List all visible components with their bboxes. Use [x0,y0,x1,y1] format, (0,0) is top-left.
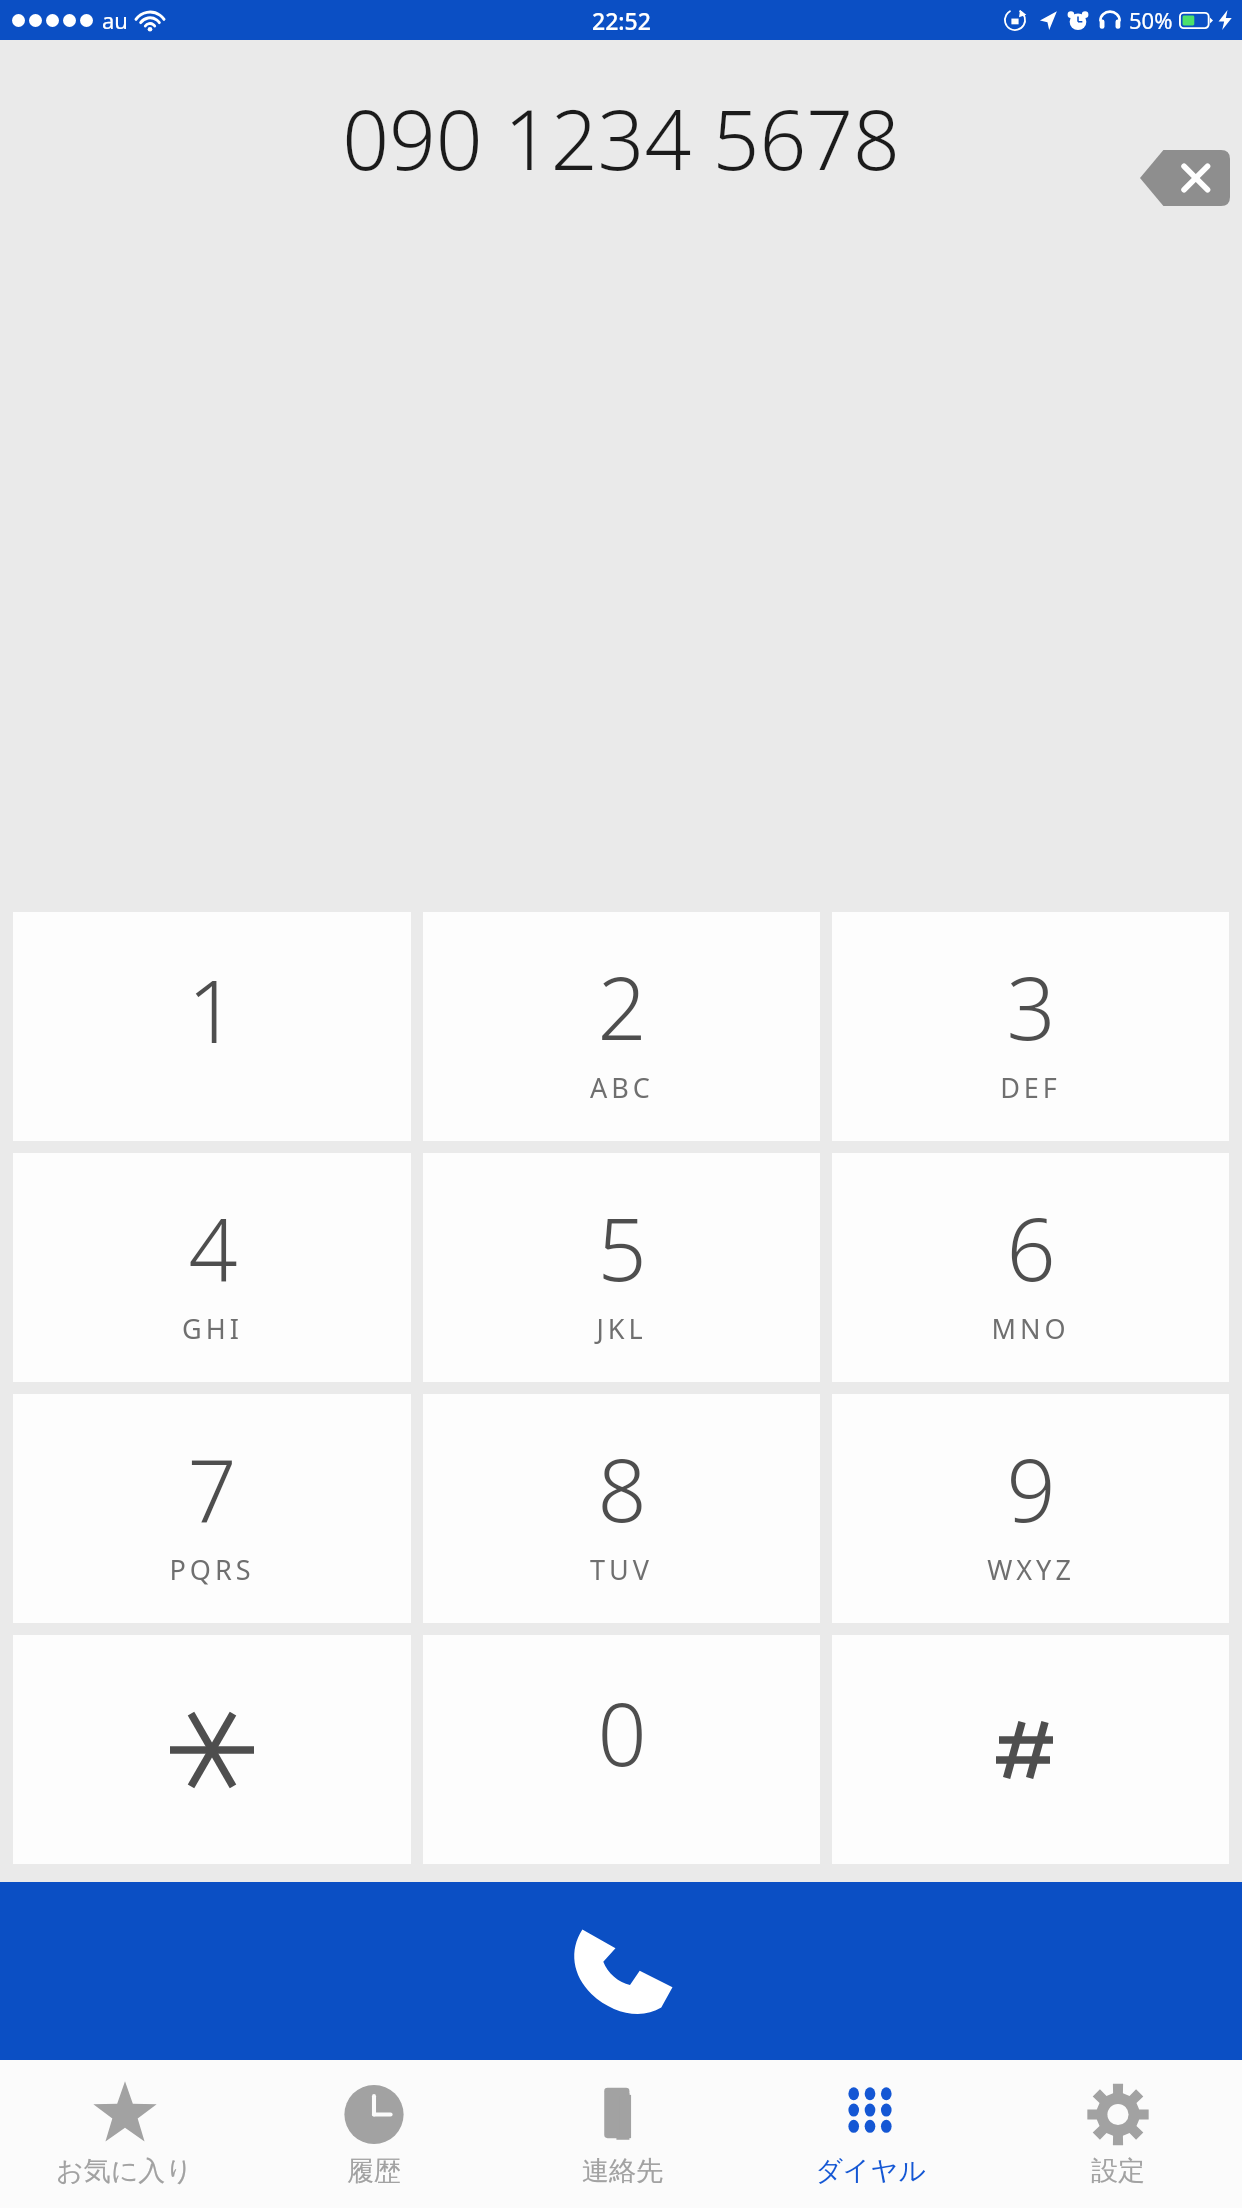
staticText: 連絡先 [582,2154,663,2188]
button[interactable]: 9 [832,1394,1229,1623]
staticText: 22:52 [592,5,651,36]
staticText: ダイヤル [815,2154,926,2188]
staticText: 4 [188,1189,238,1306]
button[interactable]: Call [0,1882,1242,2060]
button[interactable]: Delete [1140,150,1230,206]
button[interactable]: 4 [13,1153,411,1382]
staticText: 7 [187,1430,237,1547]
staticText: JKL [596,1310,647,1347]
button[interactable]: 7 [13,1394,411,1623]
staticText: 3 [1006,948,1056,1065]
button[interactable] [13,1635,411,1864]
staticText: WXYZ [987,1551,1075,1588]
staticText: 50% [1129,5,1173,35]
staticText: 設定 [1091,2154,1145,2188]
button[interactable]: ダイヤル [746,2060,994,2208]
button[interactable]: 履歴 [249,2060,498,2208]
staticText: ABC [590,1069,654,1106]
button[interactable]: 5 [423,1153,820,1382]
staticText: 090 1234 5678 [342,82,900,194]
staticText: 5 [597,1189,647,1306]
button[interactable] [832,1635,1229,1864]
button[interactable]: 0 [423,1635,820,1864]
staticText: 9 [1006,1430,1056,1547]
staticText: 8 [597,1430,647,1547]
button[interactable]: 6 [832,1153,1229,1382]
staticText: au [102,5,128,35]
staticText: DEF [1000,1069,1061,1106]
button[interactable]: 連絡先 [498,2060,746,2208]
staticText: 2 [597,948,647,1065]
button[interactable]: 8 [423,1394,820,1623]
button[interactable]: 2 [423,912,820,1141]
button[interactable]: 3 [832,912,1229,1141]
staticText: お気に入り [56,2154,193,2188]
button[interactable]: 設定 [994,2060,1242,2208]
button[interactable]: お気に入り [0,2060,249,2208]
staticText: 履歴 [347,2154,401,2188]
staticText: GHI [182,1310,243,1347]
staticText: 1 [187,951,237,1068]
staticText: TUV [590,1551,653,1588]
staticText: 6 [1006,1189,1056,1306]
staticText: PQRS [169,1551,255,1588]
staticText: 0 [597,1674,647,1791]
staticText: MNO [991,1310,1070,1347]
button[interactable]: 1 [13,912,411,1141]
